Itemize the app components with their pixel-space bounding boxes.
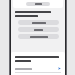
button[interactable] <box>13 0 63 8</box>
button[interactable] <box>18 27 59 32</box>
button[interactable] <box>18 20 59 25</box>
button[interactable] <box>26 2 50 6</box>
button[interactable]: Send <box>15 66 61 71</box>
button[interactable]: Send <box>58 67 61 70</box>
button[interactable] <box>18 34 59 39</box>
